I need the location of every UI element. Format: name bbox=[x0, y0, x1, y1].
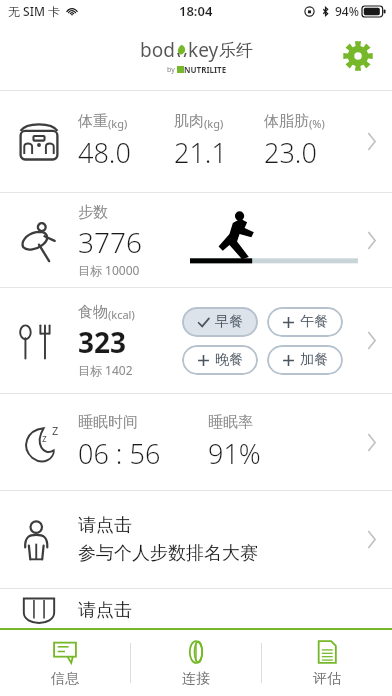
staticText: 21.1 bbox=[174, 134, 227, 171]
staticText: (%) bbox=[309, 116, 325, 131]
button[interactable]: 加餐 bbox=[267, 345, 343, 375]
staticText: NUTRILITE bbox=[184, 64, 227, 75]
staticText: 3776 bbox=[78, 223, 142, 261]
button[interactable]: 请点击 bbox=[0, 491, 392, 588]
staticText: 体重 bbox=[78, 112, 108, 131]
staticText: 91% bbox=[208, 435, 261, 472]
staticText: 连接 bbox=[182, 670, 210, 688]
button[interactable]: 步数 bbox=[0, 193, 392, 287]
staticText: 午餐 bbox=[300, 313, 328, 331]
staticText: Z bbox=[52, 423, 59, 438]
staticText: 请点击 bbox=[78, 599, 132, 622]
staticText: 晚餐 bbox=[215, 351, 243, 369]
button[interactable]: 体重 bbox=[0, 91, 392, 192]
staticText: 参与个人步数排名大赛 bbox=[78, 542, 258, 565]
staticText: 无 SIM 卡 bbox=[8, 3, 61, 19]
button[interactable]: z bbox=[0, 394, 392, 490]
staticText: 肌肉 bbox=[174, 112, 204, 131]
staticText: bod bbox=[140, 37, 175, 63]
staticText: 乐纤 bbox=[219, 40, 253, 61]
staticText: 加餐 bbox=[300, 351, 328, 369]
staticText: 早餐 bbox=[215, 313, 243, 331]
staticText: (kg) bbox=[204, 116, 224, 131]
button[interactable]: Connect bbox=[131, 630, 261, 696]
staticText: 步数 bbox=[78, 203, 108, 222]
staticText: 睡眠时间 bbox=[78, 413, 138, 432]
staticText: 323 bbox=[78, 323, 127, 361]
staticText: 评估 bbox=[313, 670, 341, 688]
button[interactable]: Settings bbox=[338, 36, 378, 76]
button[interactable]: 请点击 bbox=[0, 589, 392, 628]
staticText: z bbox=[42, 431, 47, 445]
staticText: (kcal) bbox=[108, 307, 135, 322]
staticText: 请点击 bbox=[78, 514, 132, 537]
button[interactable]: 早餐 bbox=[182, 307, 258, 337]
staticText: 18:04 bbox=[179, 2, 213, 20]
button[interactable]: 食物 bbox=[0, 288, 392, 393]
staticText: 睡眠率 bbox=[208, 413, 253, 432]
staticText: 94% bbox=[335, 3, 359, 19]
staticText: 目标 1402 bbox=[78, 362, 133, 378]
staticText: y bbox=[177, 44, 187, 57]
staticText: by bbox=[167, 65, 177, 75]
staticText: 目标 10000 bbox=[78, 262, 140, 278]
staticText: 48.0 bbox=[78, 134, 131, 171]
staticText: 食物 bbox=[78, 303, 108, 322]
button[interactable]: Assessment bbox=[262, 630, 392, 696]
staticText: 23.0 bbox=[264, 134, 317, 171]
staticText: 体脂肪 bbox=[264, 112, 309, 131]
staticText: key bbox=[188, 37, 219, 63]
staticText: 信息 bbox=[51, 670, 79, 688]
button[interactable]: Messages bbox=[0, 630, 130, 696]
staticText: 06 : 56 bbox=[78, 435, 161, 472]
staticText: (kg) bbox=[108, 116, 128, 131]
button[interactable]: 晚餐 bbox=[182, 345, 258, 375]
button[interactable]: 午餐 bbox=[267, 307, 343, 337]
